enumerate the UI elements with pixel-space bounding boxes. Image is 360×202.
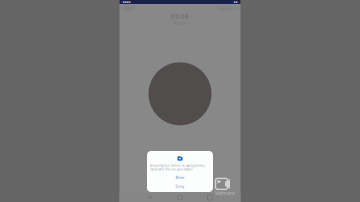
- staticText: ▪▪▪▪: [122, 0, 130, 4]
- button[interactable]: Deny: [147, 183, 213, 190]
- staticText: Vidmore: [215, 189, 235, 197]
- staticText: Allow Vay Tien Online to access photos, …: [150, 164, 205, 171]
- staticText: Logout ✕: [217, 5, 238, 12]
- staticText: Allow: [175, 175, 184, 180]
- button[interactable]: ‹ Mbsc: [120, 4, 135, 13]
- staticText: 06/11/23: [173, 20, 187, 26]
- button[interactable]: Recents: [203, 191, 216, 202]
- staticText: ▪▪: [233, 0, 237, 4]
- button[interactable]: Logout ✕: [216, 4, 239, 13]
- button[interactable]: Home: [173, 191, 186, 202]
- button[interactable]: Back: [143, 190, 156, 202]
- button[interactable]: Allow: [147, 174, 213, 181]
- staticText: Deny: [175, 184, 184, 189]
- staticText: ‹ Mbsc: [121, 5, 134, 12]
- staticText: 03:08: [171, 12, 189, 20]
